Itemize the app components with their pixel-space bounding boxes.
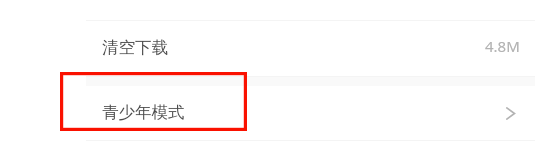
staticText: 青少年模式 bbox=[102, 102, 185, 123]
button[interactable]: 清空下载 bbox=[86, 21, 535, 76]
button[interactable]: 青少年模式 bbox=[86, 86, 535, 140]
staticText: 4.8M bbox=[485, 36, 520, 56]
other: 青少年模式 bbox=[499, 103, 519, 123]
staticText: 清空下载 bbox=[102, 37, 168, 58]
